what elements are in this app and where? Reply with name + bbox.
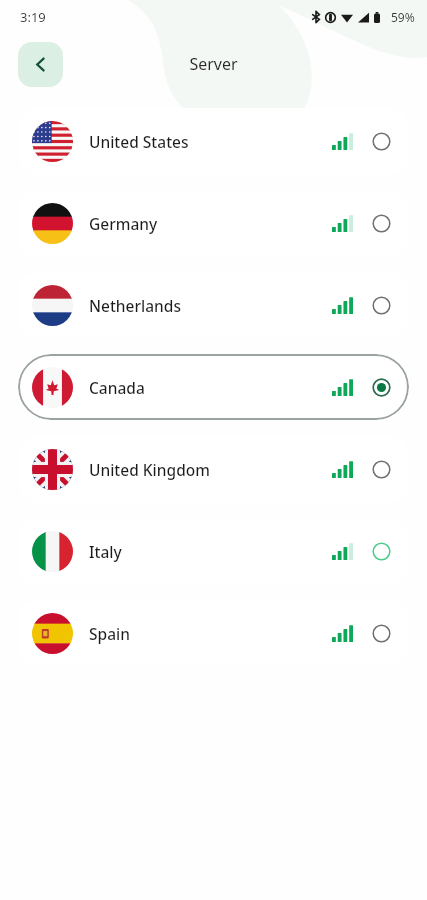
button[interactable]: Netherlands xyxy=(18,272,409,338)
staticText: Server xyxy=(189,53,238,75)
button[interactable]: Canada xyxy=(18,354,409,420)
staticText: Netherlands xyxy=(89,295,332,316)
button[interactable]: Italy xyxy=(18,518,409,584)
staticText: United States xyxy=(89,131,332,152)
button[interactable]: Germany xyxy=(18,190,409,256)
staticText: 59% xyxy=(391,9,415,25)
staticText: Spain xyxy=(89,623,332,644)
staticText: Canada xyxy=(89,377,332,398)
staticText: United Kingdom xyxy=(89,459,332,480)
staticText: 3:19 xyxy=(20,8,46,26)
button[interactable]: Spain xyxy=(18,600,409,666)
button[interactable]: United States xyxy=(18,108,409,174)
button[interactable]: Back xyxy=(18,42,63,87)
staticText: Germany xyxy=(89,213,332,234)
button[interactable]: United Kingdom xyxy=(18,436,409,502)
staticText: Italy xyxy=(89,541,332,562)
